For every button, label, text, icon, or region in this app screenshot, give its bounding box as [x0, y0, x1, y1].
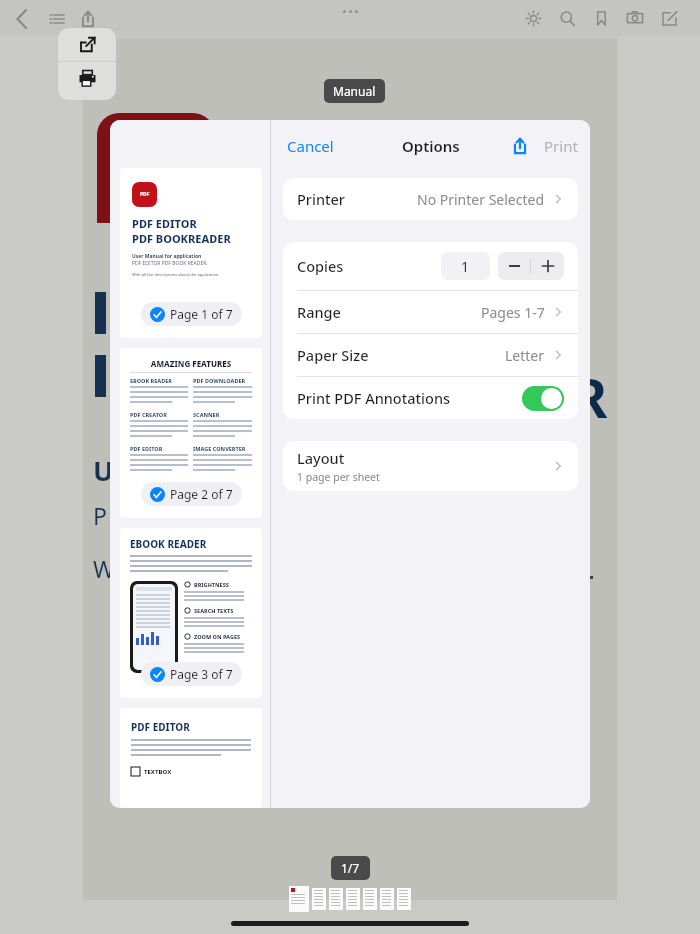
- staticText: 1 page per sheet: [297, 470, 380, 484]
- button[interactable]: Increase copies: [531, 252, 564, 280]
- button[interactable]: Copies: [283, 242, 578, 290]
- staticText: PDF BOOKREADER: [132, 231, 231, 246]
- staticText: IMAGE CONVERTER: [193, 445, 246, 452]
- button[interactable]: Edit: [654, 3, 684, 33]
- staticText: PDF EDITOR: [131, 720, 190, 734]
- button[interactable]: Brightness: [518, 3, 548, 33]
- button[interactable]: Decrease copies: [498, 252, 530, 280]
- button[interactable]: Paper Size: [283, 334, 578, 376]
- button[interactable]: [289, 886, 309, 912]
- staticText: Page 2 of 7: [170, 486, 233, 502]
- button[interactable]: Layout: [283, 441, 578, 491]
- button[interactable]: Print: [540, 131, 582, 161]
- button[interactable]: Printer: [283, 178, 578, 220]
- staticText: Range: [297, 302, 341, 322]
- staticText: Print PDF Annotations: [297, 388, 451, 408]
- button[interactable]: AMAZING FEATURES: [120, 348, 262, 518]
- staticText: EBOOK READER: [130, 537, 207, 551]
- button[interactable]: Bookmark: [586, 3, 616, 33]
- button[interactable]: [363, 888, 377, 910]
- staticText: Print: [544, 136, 578, 156]
- button[interactable]: Share: [506, 132, 534, 160]
- button[interactable]: [346, 888, 360, 910]
- staticText: PDF EDITOR: [130, 445, 163, 452]
- staticText: Pages 1-7: [481, 303, 545, 322]
- button[interactable]: [397, 888, 411, 910]
- button[interactable]: Range: [283, 291, 578, 333]
- button[interactable]: [329, 888, 343, 910]
- staticText: TEXTBOX: [144, 768, 172, 776]
- staticText: W: [93, 553, 115, 584]
- button[interactable]: PDF: [120, 168, 262, 338]
- button[interactable]: Share: [72, 3, 104, 35]
- staticText: Manual: [333, 83, 376, 99]
- staticText: SCANNER: [193, 411, 220, 418]
- button[interactable]: Contents: [41, 3, 73, 35]
- staticText: PDF EDITOR: [132, 216, 197, 231]
- staticText: User Manual for application: [132, 253, 202, 260]
- staticText: Page 1 of 7: [170, 306, 233, 322]
- staticText: Copies: [297, 256, 344, 276]
- staticText: Printer: [297, 189, 345, 209]
- staticText: AMAZING FEATURES: [130, 358, 252, 369]
- button[interactable]: Print PDF Annotations toggle: [522, 386, 564, 411]
- staticText: Options: [402, 136, 460, 156]
- staticText: EBOOK READER: [130, 377, 172, 384]
- staticText: Page 3 of 7: [170, 666, 233, 682]
- staticText: Layout: [297, 448, 345, 468]
- staticText: R: [572, 360, 608, 434]
- staticText: Letter: [505, 346, 545, 365]
- staticText: P: [93, 500, 107, 531]
- button[interactable]: Print: [58, 62, 116, 94]
- button[interactable]: EBOOK READER: [120, 528, 262, 698]
- button[interactable]: [380, 888, 394, 910]
- staticText: With all the descriptions about the appl…: [132, 272, 220, 277]
- staticText: U: [93, 452, 114, 489]
- staticText: BRIGHTNESS: [194, 581, 229, 588]
- button[interactable]: Back: [6, 3, 38, 35]
- staticText: Paper Size: [297, 345, 369, 365]
- button[interactable]: [312, 888, 326, 910]
- staticText: PDF CREATOR: [130, 411, 167, 418]
- button[interactable]: 1/7: [341, 860, 360, 876]
- button[interactable]: Search: [552, 3, 582, 33]
- button[interactable]: Manual: [333, 83, 376, 99]
- button[interactable]: 1: [441, 252, 490, 280]
- button[interactable]: Open in: [58, 28, 116, 61]
- staticText: No Printer Selected: [417, 190, 545, 209]
- button[interactable]: Cancel: [279, 131, 342, 161]
- staticText: Cancel: [287, 136, 334, 156]
- button[interactable]: PDF EDITOR: [120, 708, 262, 808]
- staticText: 1/7: [341, 860, 360, 876]
- staticText: SEARCH TEXTS: [194, 607, 234, 614]
- staticText: ZOOM ON PAGES: [194, 633, 241, 640]
- staticText: 1: [461, 257, 470, 276]
- staticText: PDF: [140, 191, 150, 198]
- staticText: PDF EDITOR PDF BOOK READER.: [132, 260, 208, 267]
- staticText: PDF DOWNLOADER: [193, 377, 246, 384]
- button[interactable]: Camera: [620, 3, 650, 33]
- button[interactable]: Print PDF Annotations: [283, 377, 578, 419]
